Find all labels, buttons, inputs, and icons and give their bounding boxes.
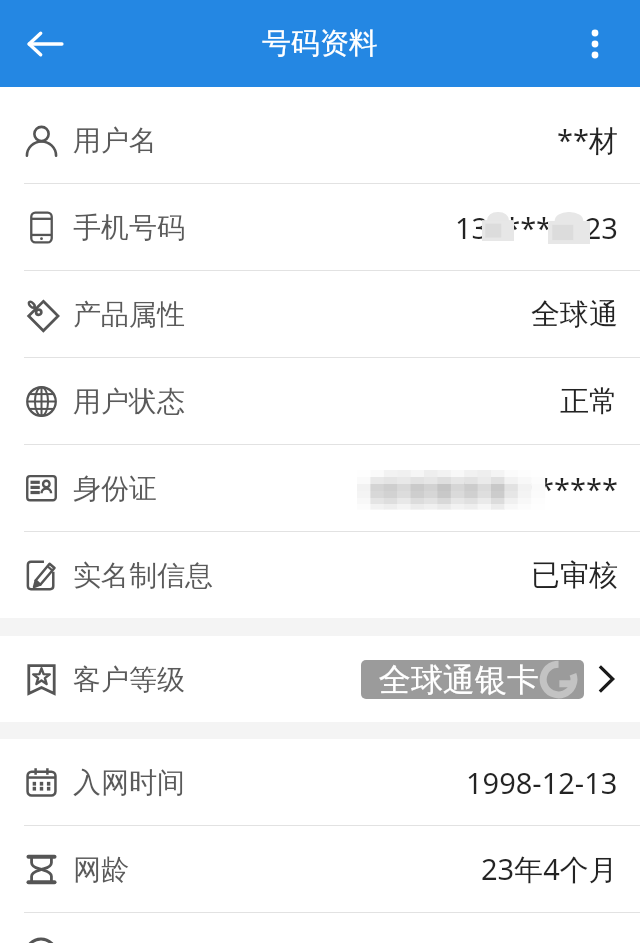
button[interactable]: 套餐 [0, 913, 640, 943]
staticText: 1998-12-13 [466, 763, 618, 802]
staticText: **材 [557, 120, 618, 160]
staticText: 手机号码 [73, 210, 185, 245]
button[interactable]: 入网时间 [0, 739, 640, 825]
staticText: 用户状态 [73, 384, 185, 419]
staticText: 全球通 [531, 296, 618, 333]
staticText: 产品属性 [73, 297, 185, 332]
button[interactable]: 用户名 [0, 97, 640, 183]
staticText: 23年4个月 [481, 849, 618, 889]
staticText: 用户名 [73, 123, 157, 158]
staticText: 入网时间 [73, 765, 185, 800]
button[interactable]: 客户等级 [0, 636, 640, 722]
other: Details [592, 665, 620, 693]
staticText: 实名制信息 [73, 558, 213, 593]
staticText: 全球通银卡 [379, 660, 539, 699]
button[interactable]: More options [570, 19, 620, 69]
button[interactable]: 实名制信息 [0, 532, 640, 618]
staticText: 客户等级 [73, 662, 185, 697]
button[interactable]: Back [14, 13, 76, 75]
staticText: 13*****523 [455, 208, 618, 247]
staticText: 正常 [560, 383, 618, 420]
button[interactable]: 手机号码 [0, 184, 640, 270]
staticText: 身份证 [73, 471, 157, 506]
staticText: 已审核 [531, 557, 618, 594]
staticText: 号码资料 [262, 25, 378, 62]
button[interactable]: 网龄 [0, 826, 640, 912]
staticText: 网龄 [73, 852, 129, 887]
staticText: 3***** ****** [418, 469, 618, 508]
button[interactable]: 身份证 [0, 445, 640, 531]
button[interactable]: 产品属性 [0, 271, 640, 357]
button[interactable]: 用户状态 [0, 358, 640, 444]
